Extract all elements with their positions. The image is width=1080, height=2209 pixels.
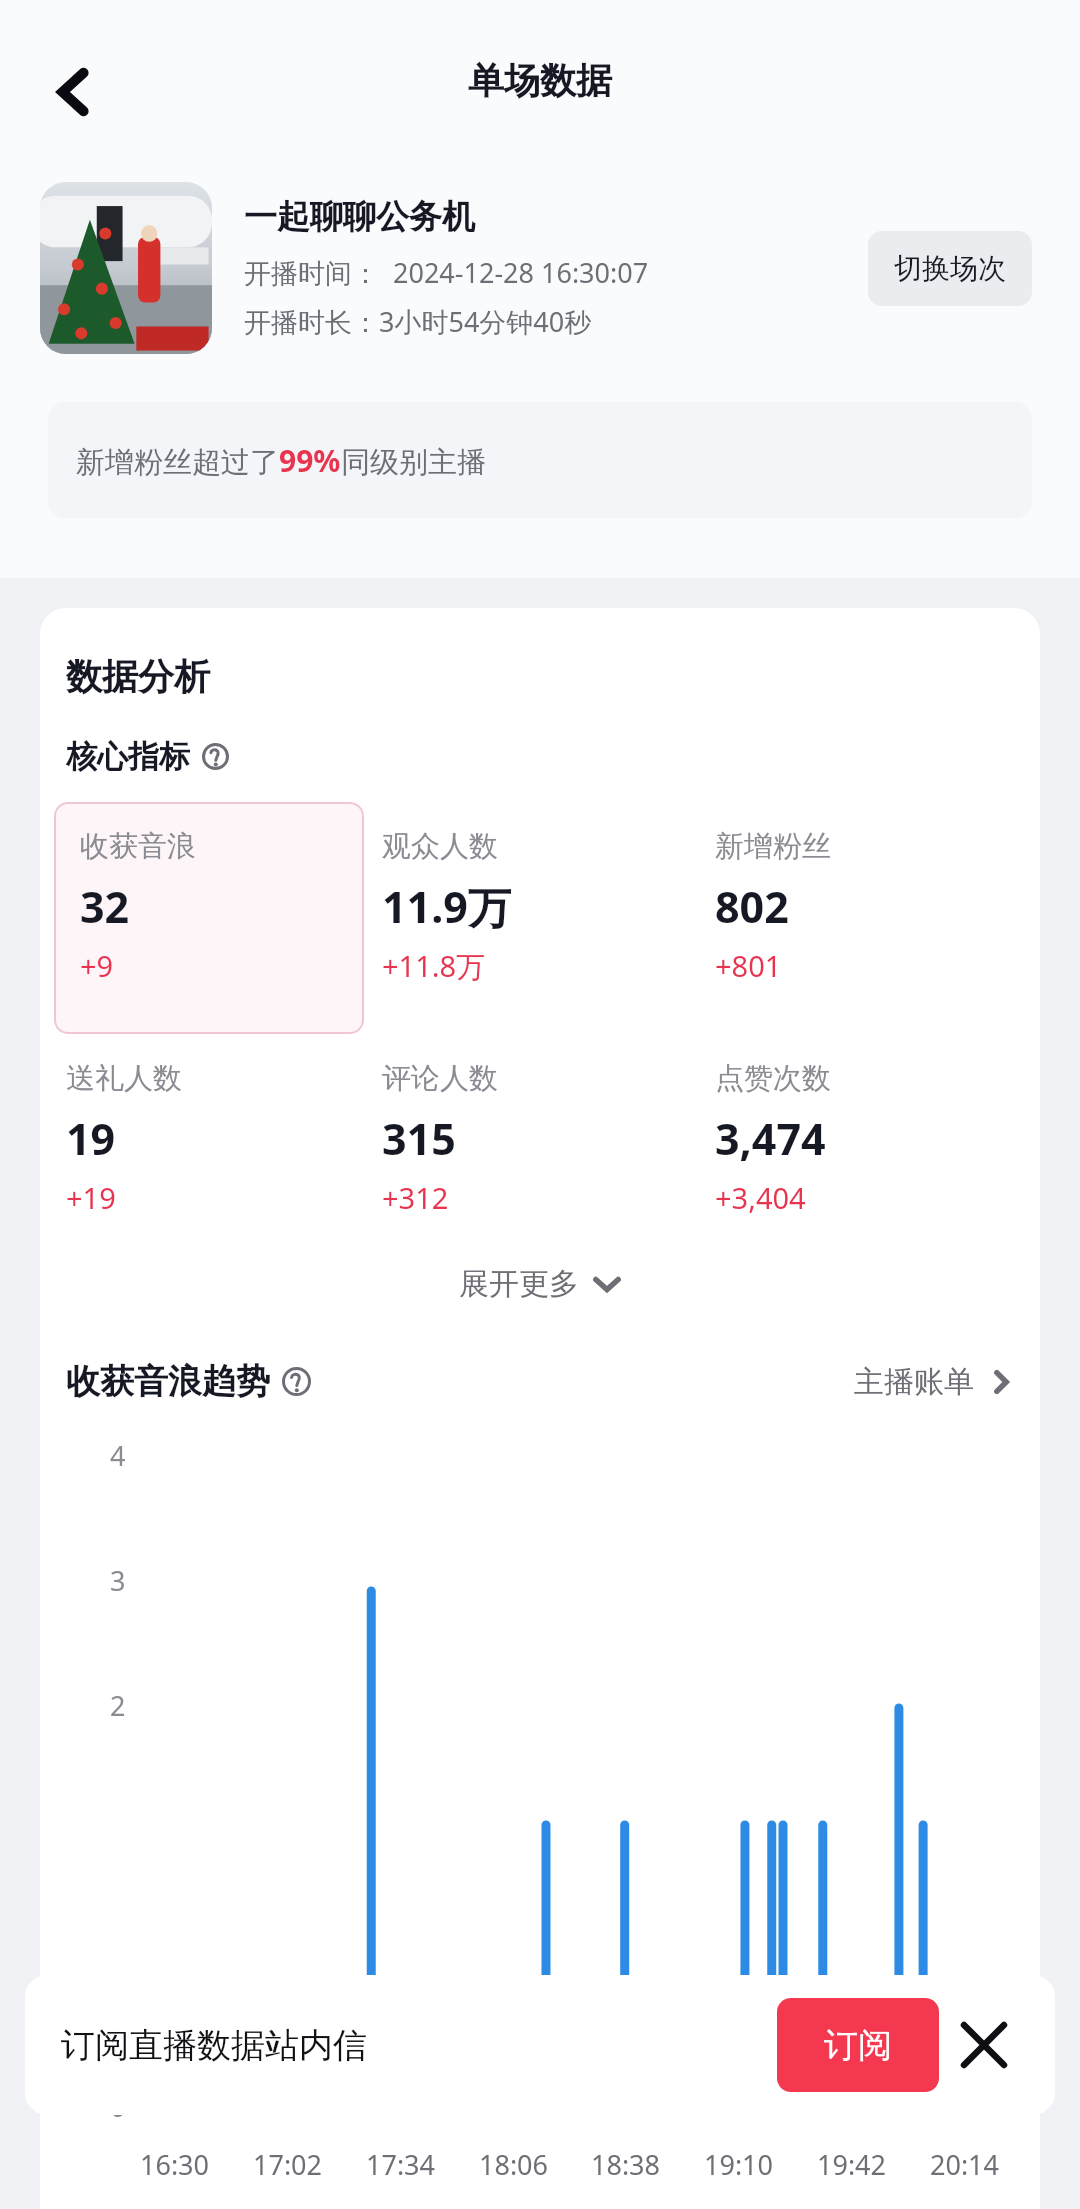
staticText: +9 bbox=[80, 946, 114, 985]
button[interactable]: 展开更多 bbox=[40, 1246, 1040, 1322]
staticText: 18:38 bbox=[591, 2146, 661, 2183]
staticText: 同级别主播 bbox=[341, 444, 486, 481]
staticText: 17:34 bbox=[366, 2146, 436, 2183]
staticText: 开播时长：3小时54分钟40秒 bbox=[244, 303, 592, 340]
staticText: 19 bbox=[66, 1109, 116, 1168]
staticText: 订阅直播数据站内信 bbox=[61, 2024, 367, 2067]
staticText: +19 bbox=[66, 1178, 116, 1217]
button[interactable]: 新增粉丝超过了 bbox=[48, 402, 1032, 518]
staticText: 评论人数 bbox=[382, 1060, 498, 1097]
staticText: 0 bbox=[110, 2088, 126, 2125]
button[interactable]: 核心指标 bbox=[66, 737, 229, 776]
staticText: 送礼人数 bbox=[66, 1060, 182, 1097]
staticText: 数据分析 bbox=[66, 654, 210, 699]
staticText: 18:06 bbox=[479, 2146, 549, 2183]
staticText: 3 bbox=[110, 1562, 126, 1599]
staticText: 开播时间： 2024-12-28 16:30:07 bbox=[244, 254, 649, 291]
button[interactable]: 收获音浪趋势 bbox=[66, 1360, 311, 1403]
staticText: 核心指标 bbox=[66, 737, 190, 776]
staticText: 展开更多 bbox=[459, 1265, 579, 1303]
button[interactable]: 切换场次 bbox=[868, 231, 1032, 306]
button[interactable]: Live thumbnail bbox=[40, 182, 212, 354]
staticText: 新增粉丝 bbox=[715, 828, 831, 865]
staticText: 主播账单 bbox=[854, 1363, 974, 1401]
staticText: +11.8万 bbox=[382, 946, 486, 986]
button[interactable]: 主播账单 bbox=[854, 1363, 1014, 1401]
staticText: 11.9万 bbox=[382, 877, 511, 936]
staticText: 19:42 bbox=[817, 2146, 887, 2183]
staticText: 订阅 bbox=[824, 2024, 892, 2067]
staticText: 32 bbox=[80, 877, 130, 936]
staticText: 单场数据 bbox=[468, 58, 612, 103]
staticText: 新增粉丝超过了 bbox=[76, 444, 279, 481]
staticText: 2 bbox=[110, 1687, 126, 1724]
staticText: 19:10 bbox=[704, 2146, 774, 2183]
staticText: 16:30 bbox=[140, 2146, 210, 2183]
button[interactable]: 送礼人数 bbox=[40, 1034, 374, 1246]
button[interactable]: 点赞次数 bbox=[707, 1034, 1040, 1246]
staticText: 切换场次 bbox=[894, 251, 1006, 286]
staticText: +801 bbox=[715, 946, 782, 985]
button[interactable]: 评论人数 bbox=[374, 1034, 707, 1246]
staticText: 收获音浪 bbox=[80, 828, 196, 865]
staticText: 一起聊聊公务机 bbox=[244, 196, 475, 238]
staticText: 收获音浪趋势 bbox=[66, 1360, 270, 1403]
staticText: 99% bbox=[279, 440, 341, 481]
staticText: 802 bbox=[715, 877, 789, 936]
button[interactable]: Back bbox=[24, 42, 124, 142]
staticText: +3,404 bbox=[715, 1178, 806, 1217]
button[interactable]: 收获音浪 bbox=[54, 802, 364, 1034]
staticText: 点赞次数 bbox=[715, 1060, 831, 1097]
button[interactable]: Close bbox=[939, 2000, 1029, 2090]
button[interactable]: 观众人数 bbox=[374, 802, 707, 1034]
staticText: 4 bbox=[110, 1437, 126, 1474]
staticText: 观众人数 bbox=[382, 828, 498, 865]
staticText: +312 bbox=[382, 1178, 449, 1217]
button[interactable]: 订阅 bbox=[777, 1998, 939, 2092]
staticText: 17:02 bbox=[253, 2146, 323, 2183]
button[interactable]: 新增粉丝 bbox=[707, 802, 1040, 1034]
staticText: 315 bbox=[382, 1109, 456, 1168]
staticText: 3,474 bbox=[715, 1109, 826, 1168]
staticText: 20:14 bbox=[930, 2146, 1000, 2183]
